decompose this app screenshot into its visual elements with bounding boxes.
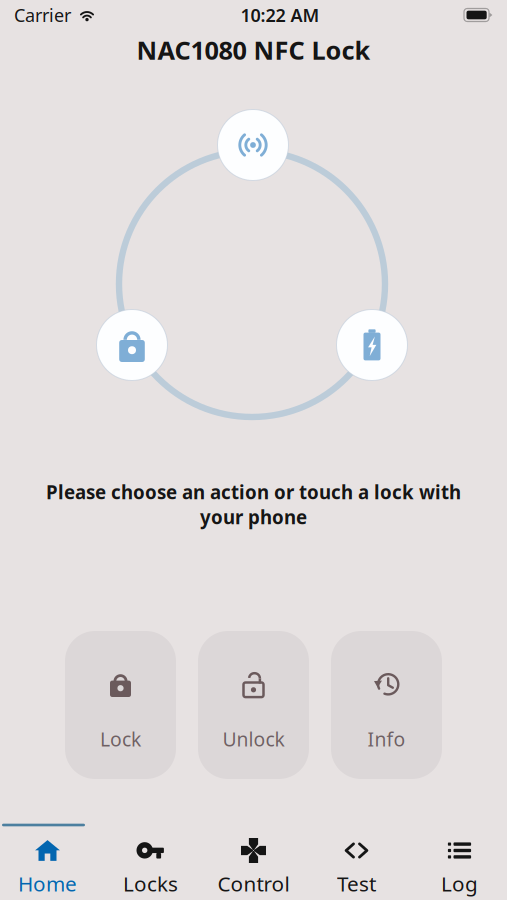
staticText: Home bbox=[18, 870, 77, 897]
staticText: Log bbox=[441, 870, 478, 897]
staticText: NAC1080 NFC Lock bbox=[136, 33, 370, 67]
button[interactable]: Test bbox=[305, 818, 408, 900]
staticText: Info bbox=[367, 726, 405, 752]
button[interactable]: Control bbox=[202, 818, 305, 900]
staticText: Please choose an action or touch a lock … bbox=[46, 480, 461, 504]
staticText: Lock bbox=[100, 726, 141, 752]
staticText: your phone bbox=[200, 505, 307, 529]
button[interactable]: Home bbox=[0, 818, 99, 900]
staticText: 10:22 AM bbox=[240, 3, 319, 27]
button[interactable]: Log bbox=[408, 818, 507, 900]
button[interactable]: Info bbox=[331, 631, 442, 779]
staticText: Test bbox=[337, 870, 376, 897]
staticText: Carrier bbox=[14, 3, 71, 27]
button[interactable]: Lock bbox=[65, 631, 176, 779]
button[interactable]: Locks bbox=[99, 818, 202, 900]
button[interactable]: Unlock bbox=[198, 631, 309, 779]
staticText: Control bbox=[217, 870, 289, 897]
staticText: Unlock bbox=[222, 726, 284, 752]
staticText: Locks bbox=[123, 870, 178, 897]
